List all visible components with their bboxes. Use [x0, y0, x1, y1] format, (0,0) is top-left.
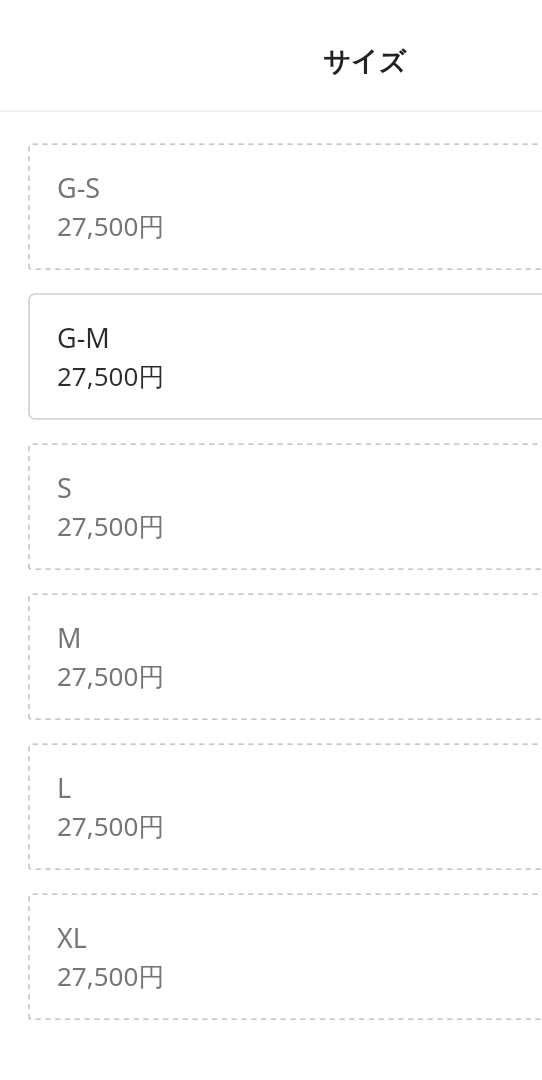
- staticText: 27,500円: [57, 508, 165, 544]
- button[interactable]: XL: [28, 893, 542, 1020]
- staticText: G-S: [57, 169, 101, 206]
- staticText: L: [57, 769, 72, 806]
- staticText: 27,500円: [57, 808, 165, 844]
- staticText: M: [57, 619, 82, 656]
- staticText: 27,500円: [57, 958, 165, 994]
- button[interactable]: L: [28, 743, 542, 870]
- button[interactable]: M: [28, 593, 542, 720]
- staticText: 27,500円: [57, 658, 165, 694]
- button[interactable]: G-S: [28, 143, 542, 270]
- staticText: 27,500円: [57, 208, 165, 244]
- staticText: XL: [57, 919, 87, 956]
- button[interactable]: S: [28, 443, 542, 570]
- staticText: S: [57, 469, 72, 506]
- staticText: サイズ: [323, 45, 406, 79]
- button[interactable]: G-M: [28, 293, 542, 420]
- staticText: G-M: [57, 319, 110, 356]
- staticText: 27,500円: [57, 358, 165, 394]
